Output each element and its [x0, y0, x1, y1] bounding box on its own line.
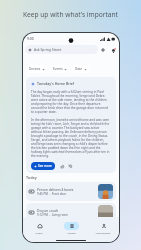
staticText: The day began early with a 6:02am stirri…	[31, 90, 110, 114]
staticText: Activity	[67, 231, 76, 234]
button[interactable]: Ask Spring Street	[25, 45, 98, 54]
staticText: 9:12 PM - Living room	[37, 213, 68, 217]
button[interactable]: Devices	[26, 65, 47, 73]
button[interactable]: Good response	[58, 162, 66, 170]
staticText: Tuesday's Home Brief	[37, 81, 75, 86]
button[interactable]: Dog on couch	[26, 203, 116, 222]
staticText: Ask Spring Street	[34, 47, 62, 52]
button[interactable]: Add device	[98, 45, 108, 55]
button[interactable]: Bad response	[66, 162, 74, 170]
staticText: Person delivers 4 boxes	[37, 187, 74, 191]
staticText: 9:00	[27, 36, 34, 41]
staticText: Events	[53, 67, 63, 71]
staticText: 9:45 PM - Front door	[37, 192, 67, 196]
staticText: In the afternoon, Jeanette arrived home …	[31, 118, 110, 158]
button[interactable]: Home	[23, 222, 55, 234]
button[interactable]: Events	[50, 65, 69, 73]
button[interactable]: Person delivers 4 boxes	[26, 182, 116, 201]
staticText: Home	[35, 231, 43, 234]
button[interactable]: Activity	[55, 222, 87, 234]
button[interactable]: Automations	[87, 222, 119, 234]
staticText: Today	[26, 175, 37, 180]
button[interactable]: Notifications	[108, 45, 118, 55]
staticText: Automations	[95, 231, 111, 234]
staticText: Dog on couch	[37, 208, 59, 212]
staticText: See more	[38, 164, 52, 168]
button[interactable]: See more	[31, 162, 55, 170]
staticText: Devices	[29, 67, 41, 71]
button[interactable]: Date	[72, 65, 89, 73]
staticText: Date	[75, 67, 83, 71]
staticText: Keep up with what's important	[0, 10, 141, 19]
